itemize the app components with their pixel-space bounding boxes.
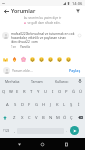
button[interactable]: Emoji reaction xyxy=(55,55,64,63)
button[interactable]: Back xyxy=(15,140,24,149)
staticText: H xyxy=(42,102,46,108)
button[interactable]: Backspace xyxy=(75,111,85,124)
staticText: F xyxy=(28,102,31,108)
button[interactable]: W xyxy=(7,85,14,98)
button[interactable]: Emoji reaction xyxy=(19,55,28,63)
button[interactable]: A xyxy=(3,98,11,111)
staticText: Yanıtla xyxy=(20,45,30,49)
staticText: bu secerim bu yazim diye tr bizi xyxy=(22,16,63,20)
button[interactable]: Emoji reaction xyxy=(37,55,46,63)
button[interactable]: Z xyxy=(10,111,18,124)
button[interactable]: Share xyxy=(74,7,82,15)
button[interactable]: Period xyxy=(64,126,69,135)
button[interactable]: F xyxy=(26,98,33,111)
staticText: Paylaş xyxy=(69,68,81,73)
button[interactable]: Shift xyxy=(0,111,10,124)
button[interactable]: Emoji reaction xyxy=(10,55,19,63)
button[interactable]: Comma xyxy=(12,126,17,135)
button[interactable]: Ü xyxy=(77,85,84,98)
button[interactable]: T xyxy=(28,85,35,98)
staticText: ikinciihsut22 com xyxy=(11,40,38,44)
button[interactable]: P xyxy=(63,85,70,98)
button[interactable]: Like xyxy=(76,32,83,39)
button[interactable]: M xyxy=(54,111,61,124)
staticText: A xyxy=(6,102,9,108)
button[interactable]: B xyxy=(40,111,47,124)
staticText: Ç xyxy=(70,115,73,121)
button[interactable]: S xyxy=(11,98,19,111)
button[interactable]: Voice input xyxy=(74,77,85,85)
staticText: N xyxy=(49,115,53,121)
button[interactable]: Ö xyxy=(61,111,68,124)
staticText: K xyxy=(56,102,59,108)
staticText: B xyxy=(42,115,45,121)
button[interactable]: O xyxy=(56,85,63,98)
button[interactable]: Kullanıcı xyxy=(49,77,74,85)
button[interactable]: H xyxy=(40,98,47,111)
button[interactable]: L xyxy=(61,98,68,111)
staticText: Ş xyxy=(70,102,73,108)
button[interactable]: Emoji reaction xyxy=(28,55,37,63)
staticText: G xyxy=(35,102,39,108)
button[interactable]: D xyxy=(19,98,26,111)
button[interactable]: Ğ xyxy=(70,85,77,98)
button[interactable]: Recents xyxy=(62,140,71,149)
button[interactable]: U xyxy=(42,85,49,98)
staticText: 14:06 xyxy=(72,1,83,6)
staticText: Merhaba xyxy=(5,79,20,84)
staticText: 1sn xyxy=(11,45,17,49)
button[interactable]: V xyxy=(33,111,40,124)
button[interactable]: Merhaba xyxy=(0,77,24,85)
button[interactable]: Ç xyxy=(68,111,75,124)
staticText: Ü xyxy=(79,89,83,95)
button[interactable]: E xyxy=(14,85,21,98)
staticText: mafsa0220krbnsuhsal ve tutunmak en cok xyxy=(11,32,75,36)
button[interactable]: mafsa0220krbnsuhsal ve tutunmak en cok xyxy=(0,32,85,49)
staticText: İ xyxy=(78,102,80,108)
button[interactable]: N xyxy=(47,111,54,124)
button[interactable]: X xyxy=(18,111,26,124)
button[interactable]: Tamam xyxy=(24,77,49,85)
staticText: S xyxy=(14,102,17,108)
staticText: V xyxy=(35,115,38,121)
staticText: Yorum ekle... xyxy=(12,68,33,73)
staticText: M xyxy=(56,115,60,121)
staticText: ?123 xyxy=(3,129,10,133)
staticText: O xyxy=(58,89,62,95)
staticText: W xyxy=(9,89,13,95)
staticText: U xyxy=(44,89,48,95)
staticText: J xyxy=(50,102,52,108)
button[interactable]: Ş xyxy=(68,98,75,111)
button[interactable]: Y xyxy=(35,85,42,98)
staticText: , xyxy=(14,128,15,133)
staticText: L xyxy=(63,102,66,108)
staticText: ve gulfi dam sifade edin. xyxy=(27,21,61,25)
staticText: Tamam xyxy=(31,79,43,84)
staticText: T xyxy=(30,89,33,95)
staticText: C xyxy=(28,115,31,121)
button[interactable]: Emoji reaction xyxy=(64,55,73,63)
staticText: Q xyxy=(2,89,6,95)
button[interactable]: Emoji reaction xyxy=(46,55,55,63)
button[interactable]: K xyxy=(54,98,61,111)
button[interactable]: G xyxy=(33,98,40,111)
staticText: R xyxy=(23,89,26,95)
staticText: Ö xyxy=(63,115,67,121)
button[interactable]: Emoji reaction xyxy=(1,55,10,63)
button[interactable]: Home xyxy=(38,140,47,149)
button[interactable]: I xyxy=(49,85,56,98)
staticText: Z xyxy=(13,115,16,121)
button[interactable]: Q xyxy=(1,85,7,98)
button[interactable]: Back xyxy=(2,7,10,15)
staticText: P xyxy=(65,89,68,95)
button[interactable]: Send xyxy=(70,126,79,135)
button[interactable]: C xyxy=(26,111,33,124)
button[interactable]: Paylaş xyxy=(68,67,82,74)
button[interactable]: J xyxy=(47,98,54,111)
staticText: D xyxy=(21,102,25,108)
staticText: X xyxy=(21,115,24,121)
button[interactable]: R xyxy=(21,85,28,98)
button[interactable]: İ xyxy=(75,98,82,111)
button[interactable]: ?123 xyxy=(0,126,12,135)
